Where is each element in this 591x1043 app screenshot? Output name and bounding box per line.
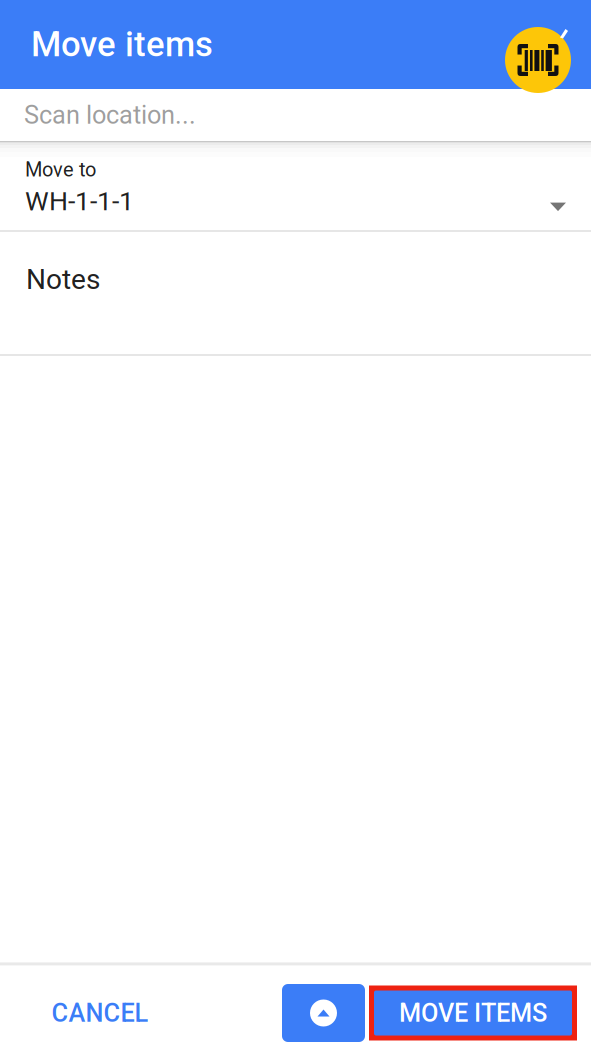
staticText: WH-1-1-1 <box>25 185 134 217</box>
staticText: CANCEL <box>51 998 148 1028</box>
button[interactable]: Move up <box>282 984 365 1042</box>
button[interactable]: Scan location... <box>0 89 591 141</box>
button[interactable]: Notes <box>0 232 591 354</box>
button[interactable]: CANCEL <box>27 987 173 1039</box>
button[interactable]: Scan barcode <box>505 27 571 93</box>
staticText: Notes <box>26 263 100 296</box>
staticText: MOVE ITEMS <box>399 998 547 1028</box>
button[interactable]: MOVE ITEMS <box>369 985 577 1040</box>
button[interactable]: Move to <box>0 157 591 230</box>
staticText: Scan location... <box>24 100 196 130</box>
staticText: Move to <box>25 158 96 181</box>
staticText: Move items <box>31 24 213 65</box>
